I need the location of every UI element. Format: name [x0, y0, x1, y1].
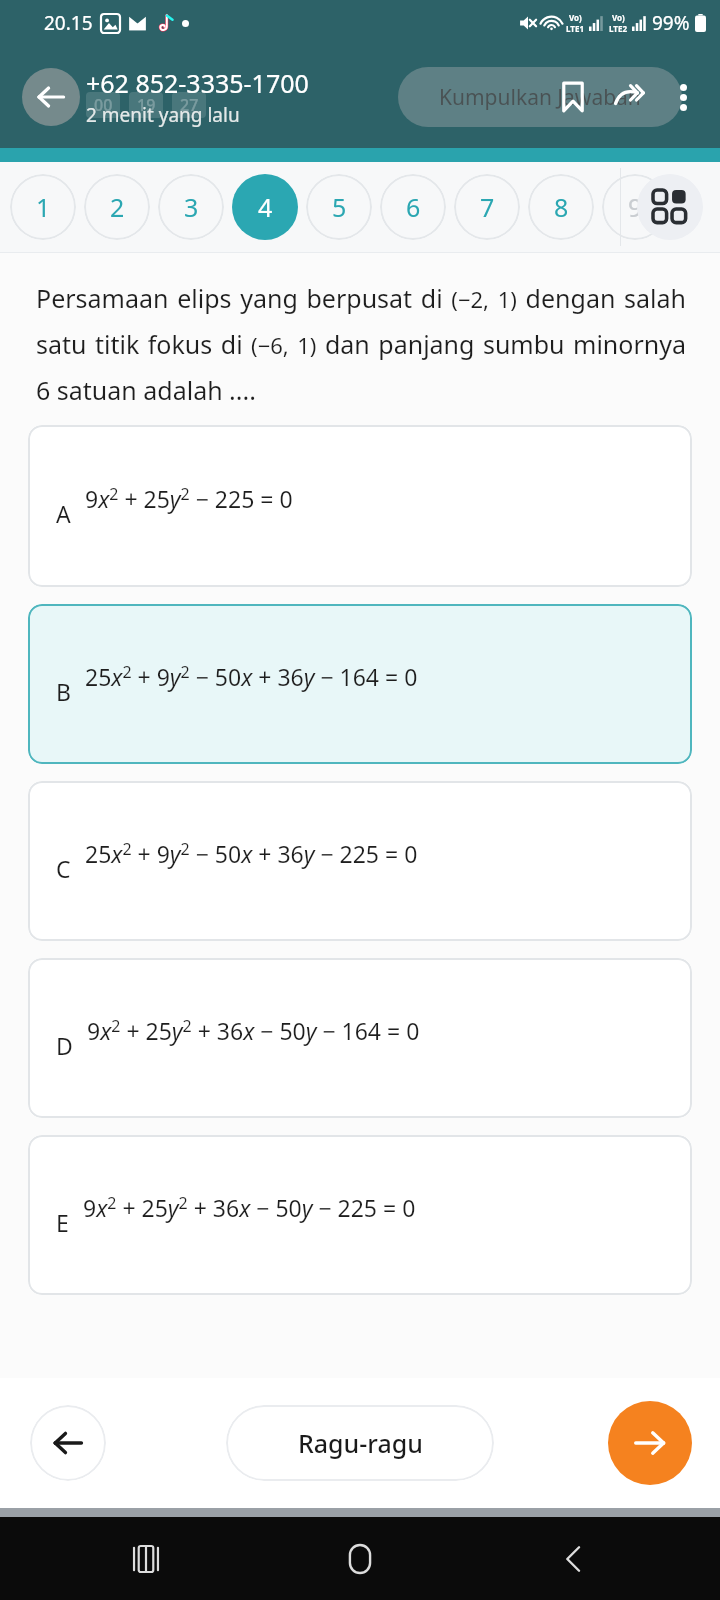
button[interactable]: Bookmark [556, 80, 590, 114]
button[interactable]: B [28, 604, 692, 764]
staticText: 9x2 + 25y2 + 36x − 50y − 164 = 0 [87, 1015, 420, 1047]
button[interactable]: 9 [602, 174, 668, 240]
button[interactable]: Back [22, 68, 80, 126]
staticText: 7 [480, 190, 495, 224]
staticText: 20.15 [44, 10, 93, 36]
button[interactable]: Forward [612, 80, 646, 114]
button[interactable]: 2 [84, 174, 150, 240]
staticText: C [56, 853, 71, 884]
staticText: Persamaan elips yang berpusat di (−2, 1)… [36, 281, 686, 407]
button[interactable]: 3 [158, 174, 224, 240]
staticText: 9 [628, 190, 643, 224]
staticText: 1 [36, 190, 51, 224]
button[interactable]: A [28, 425, 692, 587]
staticText: 9x2 + 25y2 − 225 = 0 [85, 483, 293, 515]
staticText: +62 852-3335-1700 [86, 66, 309, 100]
staticText: 25x2 + 9y2 − 50x + 36y − 164 = 0 [85, 661, 418, 693]
staticText: 99% [652, 10, 690, 36]
button[interactable]: Kumpulkan Jawaban [398, 67, 682, 127]
button[interactable]: Previous question [30, 1405, 106, 1481]
staticText: 25x2 + 9y2 − 50x + 36y − 225 = 0 [85, 838, 418, 870]
button[interactable]: Next question [608, 1401, 692, 1485]
staticText: 00 [94, 94, 113, 116]
button[interactable]: Ragu-ragu [226, 1405, 494, 1481]
staticText: Vo) [612, 12, 625, 23]
button[interactable]: More options [668, 82, 698, 112]
staticText: Vo) [569, 12, 582, 23]
staticText: LTE2 [609, 23, 627, 34]
staticText: E [56, 1207, 69, 1238]
staticText: 2 menit yang lalu [86, 102, 240, 128]
button[interactable]: Home [334, 1533, 386, 1585]
staticText: 4 [258, 190, 273, 224]
staticText: LTE1 [566, 23, 584, 34]
button[interactable]: 6 [380, 174, 446, 240]
button[interactable]: Recent apps [120, 1533, 172, 1585]
button[interactable]: 4 [232, 174, 298, 240]
staticText: Ragu-ragu [298, 1426, 423, 1460]
button[interactable]: E [28, 1135, 692, 1295]
staticText: 2 [110, 190, 125, 224]
staticText: 19 [137, 94, 156, 116]
button[interactable]: 7 [454, 174, 520, 240]
button[interactable]: Back [548, 1533, 600, 1585]
staticText: Kumpulkan Jawaban [439, 83, 641, 112]
staticText: 9x2 + 25y2 + 36x − 50y − 225 = 0 [83, 1192, 416, 1224]
button[interactable]: All questions [637, 174, 703, 240]
staticText: D [56, 1030, 73, 1061]
button[interactable]: C [28, 781, 692, 941]
staticText: 6 [406, 190, 421, 224]
staticText: B [56, 676, 71, 707]
button[interactable]: 8 [528, 174, 594, 240]
staticText: A [56, 498, 71, 529]
staticText: 27 [180, 94, 199, 116]
button[interactable]: D [28, 958, 692, 1118]
staticText: 5 [332, 190, 347, 224]
button[interactable]: 1 [10, 174, 76, 240]
staticText: 8 [554, 190, 569, 224]
staticText: 3 [184, 190, 199, 224]
button[interactable]: 5 [306, 174, 372, 240]
